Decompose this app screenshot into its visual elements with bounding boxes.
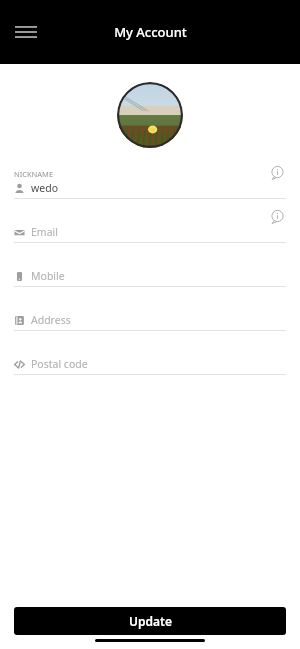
staticText: My Account [114, 23, 187, 41]
button[interactable]: Mobile [0, 249, 300, 293]
staticText: Email [31, 225, 58, 239]
button[interactable]: More information [268, 207, 286, 225]
button[interactable]: Open navigation menu [8, 14, 44, 50]
staticText: NICKNAME [14, 169, 54, 179]
button[interactable]: NICKNAME [0, 161, 300, 205]
staticText: Postal code [31, 357, 88, 371]
staticText: Mobile [31, 269, 65, 283]
button[interactable]: Postal code [0, 337, 300, 381]
button[interactable]: Profile photo [117, 82, 183, 148]
button[interactable]: Update [14, 607, 286, 635]
button[interactable]: More information [268, 163, 286, 181]
staticText: wedo [31, 181, 58, 195]
button[interactable]: Email [0, 205, 300, 249]
staticText: Address [31, 313, 71, 327]
staticText: Update [129, 613, 172, 629]
button[interactable]: Address [0, 293, 300, 337]
